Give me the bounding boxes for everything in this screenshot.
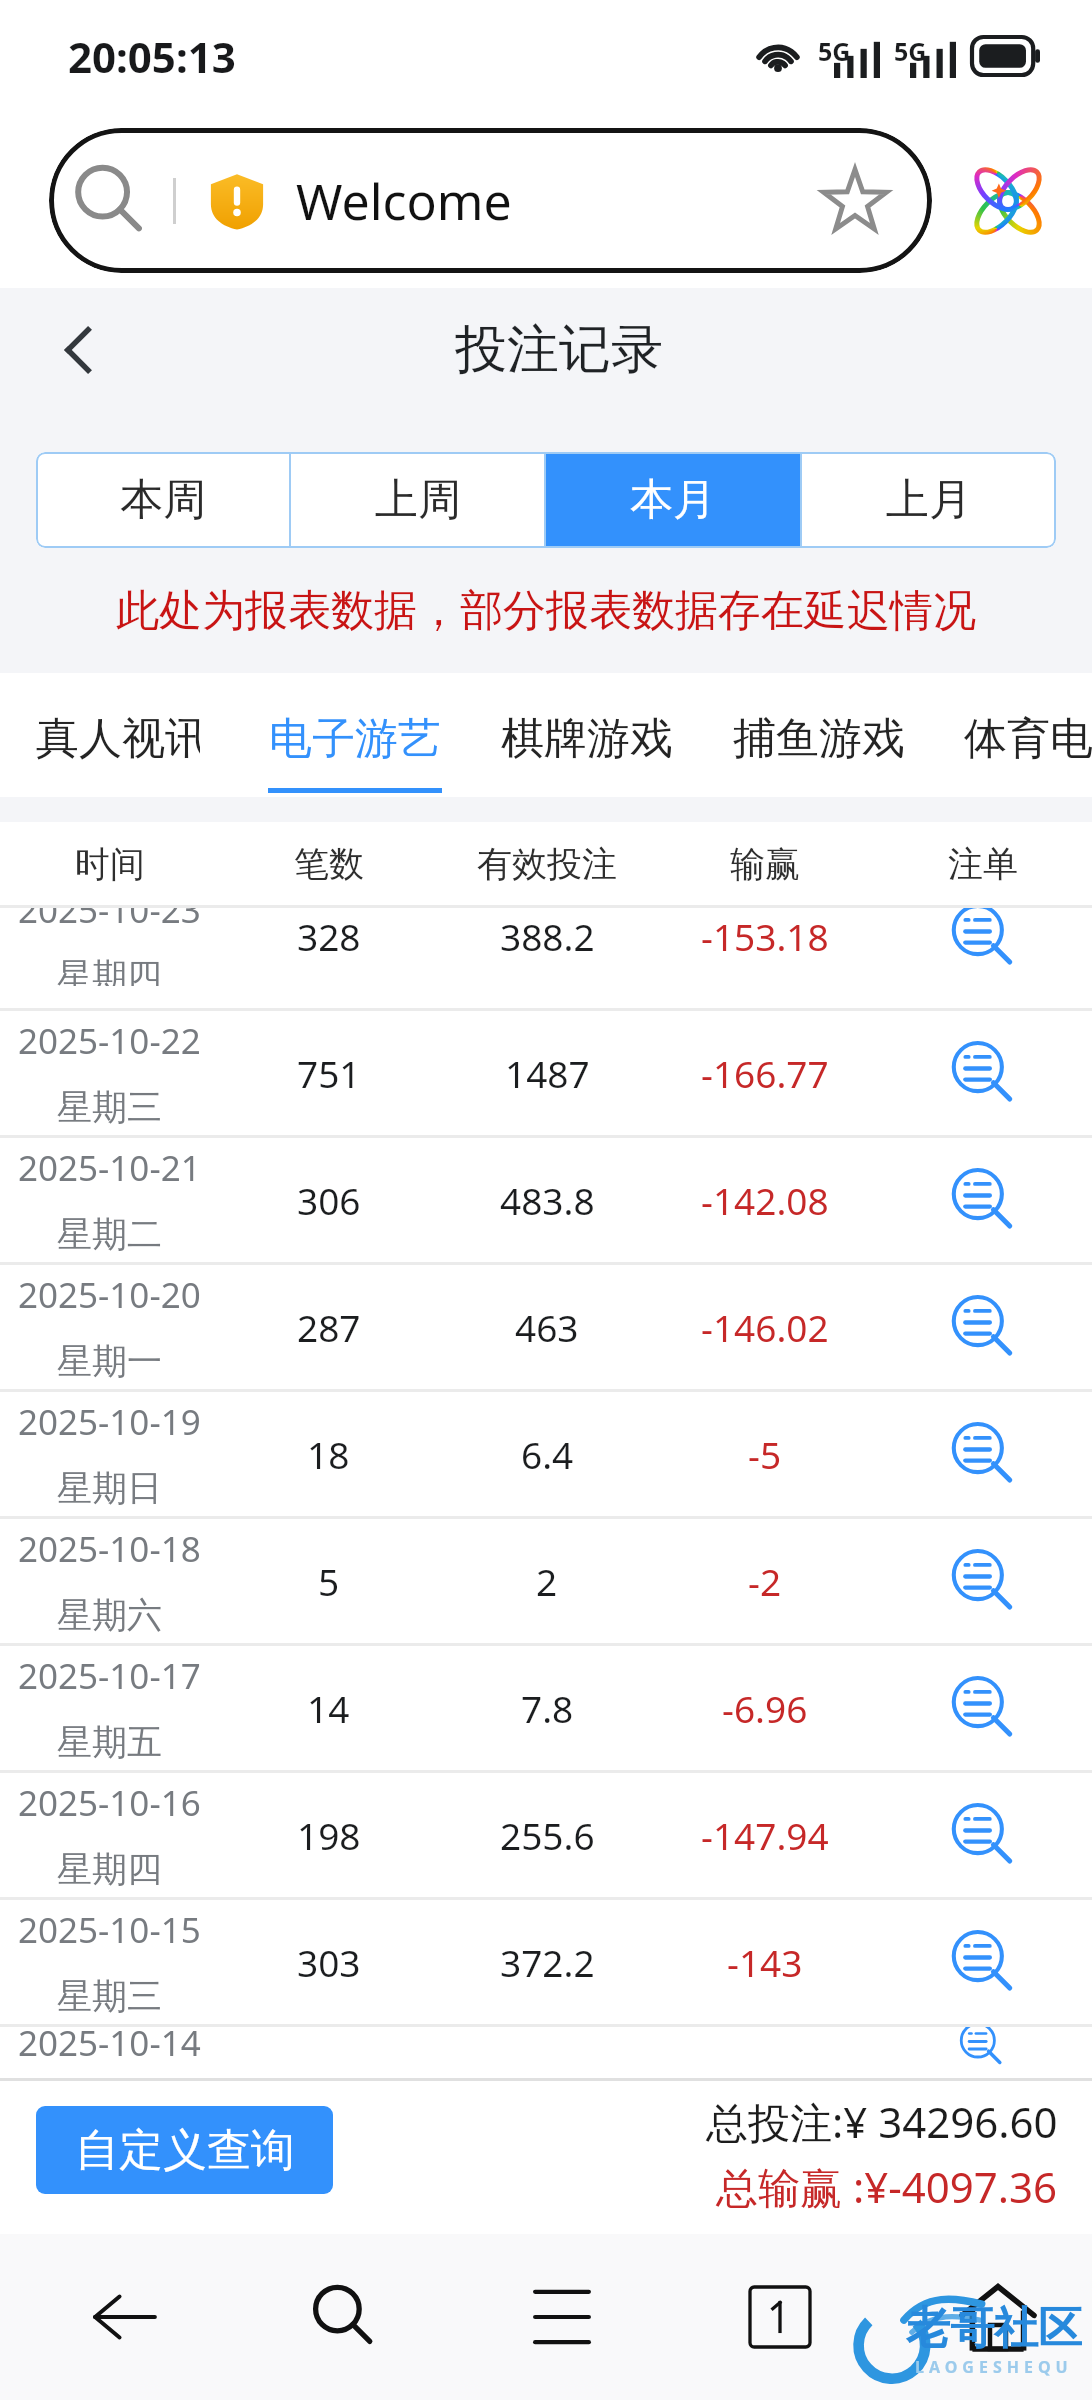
staticText: 2025-10-15 [18,1906,201,1954]
staticText: 上月 [886,473,972,527]
button[interactable]: 2025-10-14 [0,2027,1092,2078]
button[interactable]: Search [234,2234,453,2400]
staticText: 5G [818,34,851,68]
staticText: 5 [318,1556,340,1606]
staticText: 星期一 [57,1339,162,1383]
staticText: 255.6 [500,1810,595,1860]
staticText: 输赢 [730,842,800,886]
staticText: 此处为报表数据，部分报表数据存在延迟情况 [116,584,976,638]
staticText: 2025-10-16 [18,1779,201,1827]
staticText: 388.2 [500,911,595,961]
staticText: 2025-10-18 [18,1525,201,1573]
staticText: 6.4 [521,1429,574,1479]
staticText: 电子游艺 [269,712,441,766]
staticText: 2025-10-23 [18,908,201,934]
staticText: 5G [894,34,927,68]
staticText: 7.8 [521,1683,574,1733]
staticText: 1487 [505,1048,590,1098]
button[interactable]: 本月 [546,452,800,548]
staticText: 463 [515,1302,579,1352]
staticText: 自定义查询 [75,2123,295,2178]
staticText: 372.2 [500,1937,595,1987]
staticText: 2 [536,1556,558,1606]
staticText: 星期四 [57,954,162,986]
button[interactable]: 2025-10-21 [0,1138,1092,1262]
button[interactable]: Back [15,2234,234,2400]
staticText: -2 [748,1556,782,1606]
staticText: 328 [297,911,361,961]
staticText: 2025-10-21 [18,1144,201,1192]
button[interactable]: Menu [453,2234,671,2400]
staticText: 上周 [375,473,461,527]
button[interactable]: 体育电竞 [964,673,1092,797]
button[interactable]: Back [48,320,108,380]
staticText: -5 [748,1429,782,1479]
button[interactable]: 电子游艺 [268,673,442,797]
button[interactable]: 真人视讯 [36,673,200,797]
button[interactable]: 2025-10-15 [0,1900,1092,2024]
staticText: -153.18 [701,911,829,961]
staticText: 星期三 [57,1974,162,2018]
staticText: 总投注:¥ 34296.60 [706,2093,1058,2150]
button[interactable]: 本周 [36,452,289,548]
staticText: 星期六 [57,1593,162,1637]
staticText: 体育电竞 [964,712,1092,766]
button[interactable]: 2025-10-23 [0,908,1092,1008]
staticText: 投注记录 [455,317,663,383]
button[interactable]: 上月 [802,452,1056,548]
staticText: 本周 [120,473,206,527]
button[interactable]: 2025-10-19 [0,1392,1092,1516]
button[interactable]: Tabs [671,2234,889,2400]
button[interactable]: Welcome [49,128,932,273]
staticText: 2025-10-22 [18,1017,201,1065]
staticText: 时间 [75,842,145,886]
staticText: LAOGESHEQU [915,2356,1073,2378]
staticText: 2025-10-20 [18,1271,201,1319]
staticText: 笔数 [294,842,364,886]
staticText: -166.77 [701,1048,829,1098]
button[interactable]: Browser menu [966,159,1050,243]
staticText: 注单 [948,842,1018,886]
staticText: 捕鱼游戏 [733,712,905,766]
staticText: -143 [727,1937,803,1987]
staticText: 星期二 [57,1212,162,1256]
button[interactable]: 棋牌游戏 [500,673,674,797]
staticText: 751 [297,1048,361,1098]
button[interactable]: 2025-10-18 [0,1519,1092,1643]
staticText: 总输赢 :¥-4097.36 [716,2158,1058,2215]
staticText: 20:05:13 [68,28,236,85]
staticText: 星期日 [57,1466,162,1510]
button[interactable]: 自定义查询 [36,2106,333,2194]
staticText: 真人视讯 [36,712,200,766]
staticText: -142.08 [701,1175,829,1225]
staticText: 有效投注 [477,842,617,886]
staticText: 303 [297,1937,361,1987]
staticText: 老哥社区 [906,2301,1082,2356]
staticText: -147.94 [701,1810,829,1860]
staticText: 2025-10-19 [18,1398,201,1446]
staticText: 棋牌游戏 [501,712,673,766]
staticText: -146.02 [701,1302,829,1352]
staticText: 483.8 [500,1175,595,1225]
staticText: 2025-10-17 [18,1652,201,1700]
staticText: -6.96 [722,1683,808,1733]
staticText: 287 [297,1302,361,1352]
staticText: 198 [297,1810,361,1860]
staticText: 18 [307,1429,350,1479]
button[interactable]: 上周 [291,452,544,548]
staticText: 星期四 [57,1847,162,1891]
staticText: Welcome [296,167,512,235]
button[interactable]: 捕鱼游戏 [732,673,906,797]
other: Bookmark [820,166,890,236]
staticText: 306 [297,1175,361,1225]
button[interactable]: Home [889,2234,1092,2400]
staticText: 2025-10-14 [18,2027,201,2067]
staticText: 本月 [630,473,716,527]
button[interactable]: 2025-10-17 [0,1646,1092,1770]
staticText: 14 [307,1683,350,1733]
staticText: 星期三 [57,1085,162,1129]
staticText: 星期五 [57,1720,162,1764]
button[interactable]: 2025-10-20 [0,1265,1092,1389]
button[interactable]: 2025-10-22 [0,1011,1092,1135]
button[interactable]: 2025-10-16 [0,1773,1092,1897]
